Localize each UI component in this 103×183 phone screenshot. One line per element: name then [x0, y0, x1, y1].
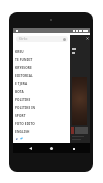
staticText: BOTA — [15, 90, 24, 94]
button[interactable]: KRYESORE — [13, 64, 90, 72]
staticText: POLITIKE IN — [15, 106, 36, 110]
staticText: f — [16, 137, 18, 140]
staticText: Kërko — [19, 37, 28, 41]
button[interactable]: E TJERA — [13, 80, 90, 88]
button[interactable]: Close ad — [86, 37, 89, 40]
button[interactable]: KREU — [13, 48, 90, 56]
staticText: KRYESORE — [15, 66, 32, 70]
button[interactable]: POLITIKE — [13, 96, 90, 104]
button[interactable]: Twitter — [20, 137, 23, 140]
staticText: EDITORIAL — [15, 74, 33, 78]
staticText: SPORT — [15, 114, 26, 118]
staticText: E TJERA — [15, 82, 28, 86]
button[interactable]: TE FUNDIT — [13, 56, 90, 64]
button[interactable]: ENGLISH — [13, 128, 90, 136]
button[interactable]: EDITORIAL — [13, 72, 90, 80]
button[interactable]: Facebook — [15, 137, 18, 140]
button[interactable]: BOTA — [13, 88, 90, 96]
button[interactable]: Kërko — [16, 36, 68, 42]
button[interactable]: Home — [47, 144, 56, 153]
button[interactable]: POLITIKE IN — [13, 104, 90, 112]
button[interactable]: Recents — [69, 144, 78, 153]
button[interactable]: SPORT — [13, 112, 90, 120]
staticText: KREU — [15, 50, 24, 54]
staticText: TE FUNDIT — [15, 58, 33, 62]
button[interactable]: FOTO EDITO — [13, 120, 90, 128]
staticText: POLITIKE — [15, 98, 31, 102]
staticText: FOTO EDITO — [15, 122, 35, 126]
button[interactable]: Back — [26, 144, 35, 153]
staticText: ENGLISH — [15, 130, 30, 134]
